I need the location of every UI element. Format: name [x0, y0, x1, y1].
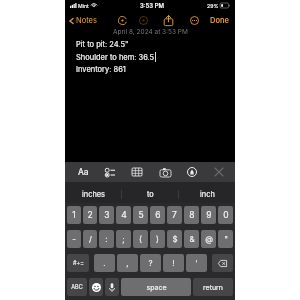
staticText: Shoulder to hem: 36.5 — [76, 53, 155, 62]
button[interactable]: $ — [167, 230, 182, 248]
staticText: space — [146, 283, 167, 291]
staticText: 7 — [172, 210, 177, 220]
button[interactable]: 0 — [218, 206, 233, 224]
staticText: 3:53 PM — [140, 2, 164, 9]
staticText: 6 — [155, 210, 161, 220]
button[interactable]: Checklist — [100, 162, 120, 182]
button[interactable]: Camera — [155, 162, 175, 182]
staticText: inch — [200, 190, 215, 199]
staticText: Done — [210, 16, 230, 25]
button[interactable]: Aa — [73, 162, 93, 182]
staticText: Aa — [78, 167, 89, 177]
button[interactable]: More options — [182, 13, 206, 27]
staticText: 2 — [87, 210, 93, 220]
button[interactable]: / — [83, 230, 97, 248]
button[interactable]: ABC — [67, 278, 87, 296]
staticText: ? — [148, 258, 153, 268]
staticText: : — [105, 234, 108, 244]
button[interactable]: ? — [140, 254, 161, 272]
button[interactable]: 2 — [83, 206, 97, 224]
staticText: ( — [139, 234, 142, 244]
button[interactable]: ) — [150, 230, 165, 248]
button[interactable]: : — [99, 230, 114, 248]
button[interactable]: Markup — [182, 162, 202, 182]
staticText: inches — [82, 190, 105, 199]
button[interactable]: ' — [186, 254, 207, 272]
staticText: ABC — [71, 284, 83, 291]
staticText: Pit to pit: 24.5" — [76, 40, 129, 49]
staticText: & — [189, 234, 195, 244]
staticText: ! — [172, 258, 175, 268]
staticText: 3 — [104, 210, 110, 220]
staticText: ' — [195, 258, 198, 268]
button[interactable]: #+= — [67, 254, 89, 272]
staticText: #+= — [73, 260, 84, 267]
staticText: to — [147, 190, 154, 199]
button[interactable]: 4 — [116, 206, 131, 224]
button[interactable]: 8 — [184, 206, 199, 224]
button[interactable]: @ — [201, 230, 216, 248]
staticText: Mint — [78, 3, 89, 9]
button[interactable]: Table — [127, 162, 147, 182]
button[interactable]: 6 — [150, 206, 165, 224]
button[interactable]: . — [94, 254, 115, 272]
staticText: 8 — [189, 210, 195, 220]
staticText: 29% — [207, 3, 219, 9]
staticText: / — [89, 234, 92, 244]
staticText: " — [224, 234, 228, 244]
button[interactable]: Done — [210, 16, 230, 25]
button[interactable]: Undo — [113, 13, 131, 27]
staticText: 0 — [223, 210, 229, 220]
button[interactable]: Notes — [69, 16, 97, 25]
staticText: ; — [122, 234, 125, 244]
button[interactable]: ; — [116, 230, 131, 248]
staticText: 4 — [121, 210, 127, 220]
button[interactable]: & — [184, 230, 199, 248]
button[interactable]: ! — [163, 254, 184, 272]
staticText: ) — [156, 234, 159, 244]
button[interactable]: Share — [156, 13, 181, 27]
staticText: $ — [172, 234, 178, 244]
button[interactable]: Backspace — [212, 254, 233, 272]
button[interactable]: space — [121, 278, 191, 296]
button[interactable]: 1 — [67, 206, 81, 224]
button[interactable]: to — [122, 185, 178, 203]
button[interactable]: Dictation — [105, 278, 119, 296]
staticText: 5 — [138, 210, 144, 220]
button[interactable]: Redo — [131, 13, 156, 27]
button[interactable]: 7 — [167, 206, 182, 224]
button[interactable]: return — [193, 278, 233, 296]
button[interactable]: 3 — [99, 206, 114, 224]
button[interactable]: inch — [179, 185, 235, 203]
staticText: - — [72, 234, 76, 244]
button[interactable]: " — [218, 230, 233, 248]
staticText: , — [126, 258, 129, 268]
button[interactable]: inches — [65, 185, 121, 203]
button[interactable]: 9 — [201, 206, 216, 224]
staticText: return — [203, 283, 223, 291]
button[interactable]: 5 — [133, 206, 148, 224]
staticText: Notes — [76, 16, 97, 25]
button[interactable]: ( — [133, 230, 148, 248]
button[interactable]: - — [67, 230, 81, 248]
button[interactable]: Emoji — [89, 278, 103, 296]
staticText: 9 — [206, 210, 212, 220]
button[interactable]: Close — [209, 162, 229, 182]
staticText: Inventory: 861 — [76, 65, 126, 74]
staticText: April 8, 2024 at 3:53 PM — [113, 28, 188, 36]
staticText: . — [103, 258, 106, 268]
button[interactable]: , — [117, 254, 138, 272]
staticText: @ — [205, 234, 213, 244]
staticText: 1 — [72, 210, 76, 220]
